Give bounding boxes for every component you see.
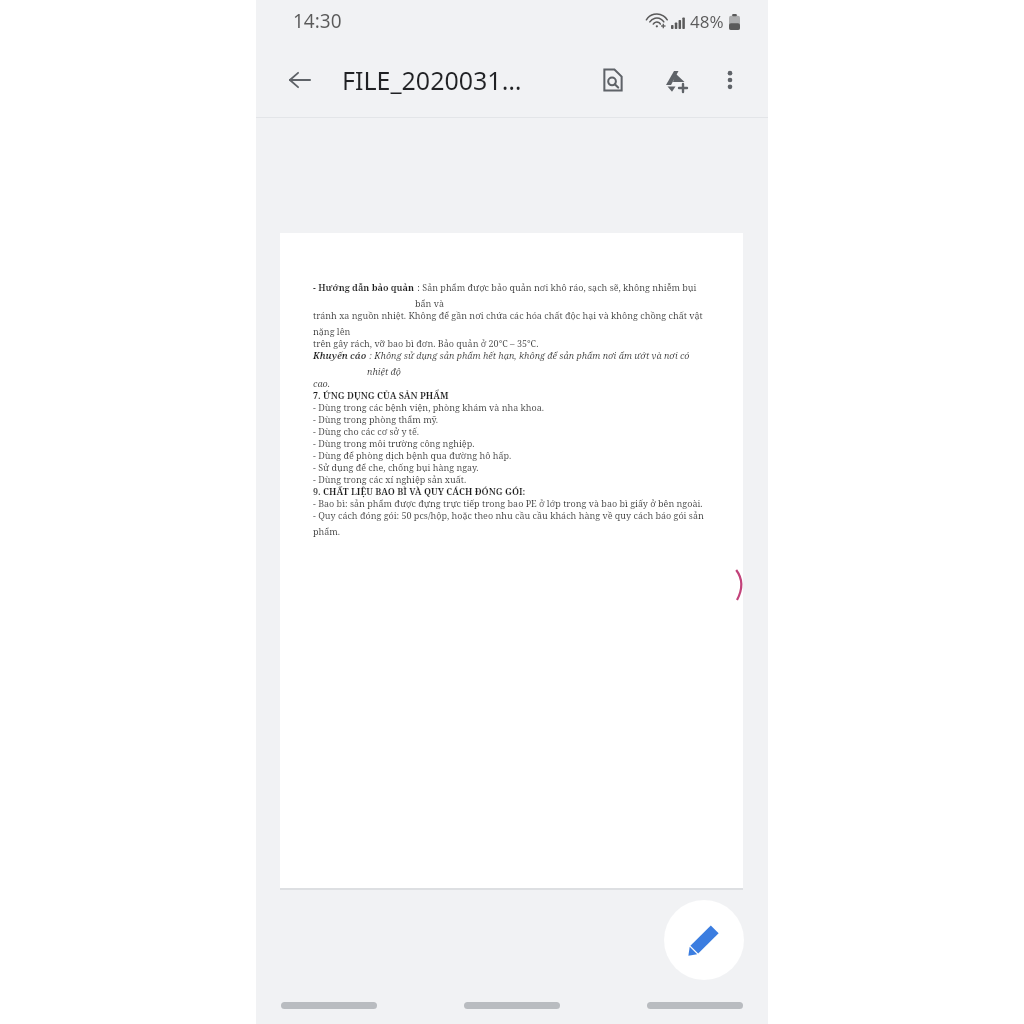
button[interactable]: Back (280, 60, 320, 100)
staticText: - Hướng dẫn bảo quản (313, 281, 415, 293)
button[interactable]: Save to Drive (654, 59, 696, 101)
staticText: - Dùng trong các bệnh viện, phòng khám v… (313, 401, 545, 413)
button[interactable]: Find in document (592, 59, 634, 101)
button[interactable]: Back (634, 988, 756, 1022)
staticText: cao. (313, 377, 331, 389)
button[interactable]: Home (451, 988, 573, 1022)
staticText: 7. ỨNG DỤNG CỦA SẢN PHẨM (313, 389, 449, 401)
staticText: : Sản phẩm được bảo quản nơi khô ráo, sạ… (415, 281, 713, 309)
staticText: - Dùng cho các cơ sở y tế. (313, 425, 420, 437)
staticText: - Dùng trong các xí nghiệp sản xuất. (313, 473, 467, 485)
staticText: 48% (690, 10, 724, 33)
staticText: 9. CHẤT LIỆU BAO BÌ VÀ QUY CÁCH ĐÓNG GÓI… (313, 485, 526, 497)
button[interactable]: More options (710, 60, 750, 100)
staticText: FILE_2020031… (342, 63, 522, 97)
staticText: 14:30 (293, 8, 342, 34)
staticText: - Dùng trong môi trường công nghiệp. (313, 437, 475, 449)
staticText: : Không sử dụng sản phẩm hết hạn, không … (367, 349, 713, 377)
staticText: - Dùng trong phòng thẩm mỹ. (313, 413, 439, 425)
button[interactable]: Recents (268, 988, 390, 1022)
staticText: Khuyến cáo (313, 349, 367, 361)
staticText: - Bao bì: sản phẩm được đựng trực tiếp t… (313, 497, 703, 509)
staticText: - Sử dụng để che, chống bụi hàng ngay. (313, 461, 479, 473)
staticText: trên gây rách, vỡ bao bì đơn. Bảo quản ở… (313, 337, 539, 349)
staticText: - Quy cách đóng gói: 50 pcs/hộp, hoặc th… (313, 509, 713, 537)
staticText: tránh xa nguồn nhiệt. Không để gần nơi c… (313, 309, 713, 337)
button[interactable]: Edit (664, 900, 744, 980)
staticText: - Dùng để phòng dịch bệnh qua đường hô h… (313, 449, 512, 461)
